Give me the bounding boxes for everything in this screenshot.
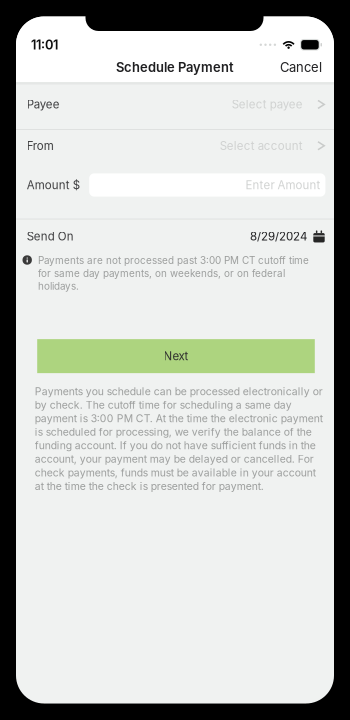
button[interactable]: From: [16, 130, 334, 173]
staticText: Enter Amount: [245, 178, 320, 192]
button[interactable]: Cancel: [275, 53, 327, 81]
staticText: Send On: [27, 229, 74, 243]
staticText: Payee: [27, 97, 60, 111]
button[interactable]: Pick date: [313, 230, 325, 242]
staticText: 8/29/2024: [250, 229, 307, 243]
staticText: Next: [163, 349, 188, 363]
staticText: Select payee: [232, 97, 303, 111]
staticText: From: [27, 139, 54, 153]
staticText: Cancel: [280, 59, 322, 75]
staticText: 11:01: [31, 37, 58, 52]
staticText: Select account: [220, 139, 303, 153]
staticText: Payments you schedule can be processed e…: [35, 385, 323, 492]
staticText: Payments are not processed past 3:00 PM …: [38, 254, 309, 292]
staticText: Amount $: [27, 178, 80, 192]
staticText: Schedule Payment: [116, 59, 234, 75]
button[interactable]: Payee: [16, 84, 334, 129]
button[interactable]: Next: [37, 339, 315, 373]
